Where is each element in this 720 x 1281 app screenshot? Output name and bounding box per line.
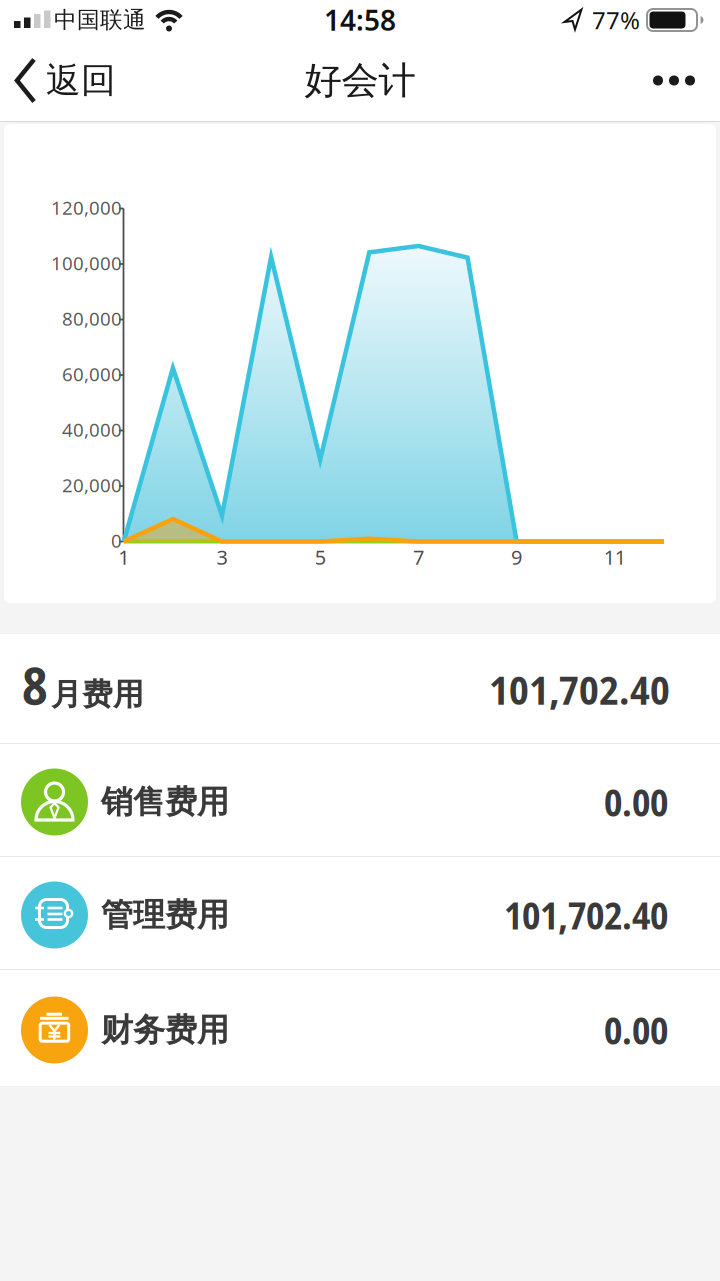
- staticText: 14:58: [324, 1, 396, 39]
- staticText: 管理费用: [101, 895, 229, 935]
- staticText: 60,000: [62, 362, 122, 386]
- staticText: 100,000: [51, 251, 122, 275]
- staticText: 40,000: [62, 417, 122, 442]
- staticText: 0.00: [604, 1005, 668, 1055]
- staticText: 中国联通: [54, 6, 146, 34]
- button[interactable]: 返回: [0, 58, 116, 102]
- staticText: 9: [511, 544, 522, 570]
- staticText: 0: [111, 528, 122, 553]
- staticText: 11: [604, 544, 626, 570]
- button[interactable]: 8: [0, 653, 720, 724]
- staticText: 7: [413, 544, 424, 570]
- button[interactable]: 销售费用: [0, 766, 720, 833]
- button[interactable]: 财务费用: [0, 994, 720, 1061]
- staticText: 8: [22, 649, 48, 720]
- staticText: 101,702.40: [489, 662, 670, 716]
- staticText: 0.00: [604, 777, 668, 827]
- staticText: 77%: [592, 4, 640, 36]
- staticText: 销售费用: [101, 782, 229, 822]
- staticText: 3: [216, 544, 227, 570]
- staticText: 120,000: [51, 195, 122, 220]
- staticText: 返回: [46, 59, 116, 102]
- staticText: 好会计: [304, 58, 415, 103]
- staticText: 1: [118, 544, 129, 570]
- staticText: 20,000: [62, 473, 122, 497]
- button[interactable]: [650, 70, 720, 90]
- staticText: 月费用: [51, 676, 144, 713]
- staticText: 80,000: [62, 306, 122, 331]
- staticText: 101,702.40: [504, 890, 668, 940]
- staticText: 5: [315, 544, 326, 570]
- button[interactable]: 管理费用: [0, 879, 720, 946]
- staticText: 财务费用: [101, 1010, 229, 1050]
